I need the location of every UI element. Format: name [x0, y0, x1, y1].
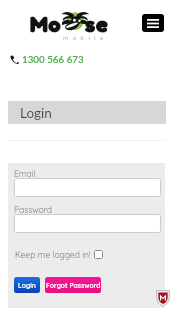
button[interactable]: McAfee Secure	[155, 288, 171, 306]
staticText: Forgot Password	[46, 281, 101, 290]
staticText: Login	[20, 105, 52, 121]
staticText: m o b i l e	[63, 34, 105, 41]
button[interactable]: 1300 566 673	[10, 53, 84, 65]
staticText: se	[85, 11, 109, 38]
staticText: 1300 566 673	[22, 53, 84, 65]
staticText: Mo	[30, 11, 62, 38]
button[interactable]	[14, 214, 161, 233]
button[interactable]: Login	[8, 101, 166, 124]
button[interactable]: Login	[14, 277, 40, 293]
staticText: Login	[18, 281, 36, 290]
button[interactable]: Forgot Password	[45, 277, 101, 293]
button[interactable]	[14, 178, 161, 197]
staticText: Password	[14, 204, 52, 215]
staticText: Email	[14, 168, 36, 179]
staticText: Keep me logged in!	[15, 249, 91, 260]
button[interactable]: Keep me logged in!	[15, 249, 103, 260]
button[interactable]: Menu	[142, 14, 164, 32]
